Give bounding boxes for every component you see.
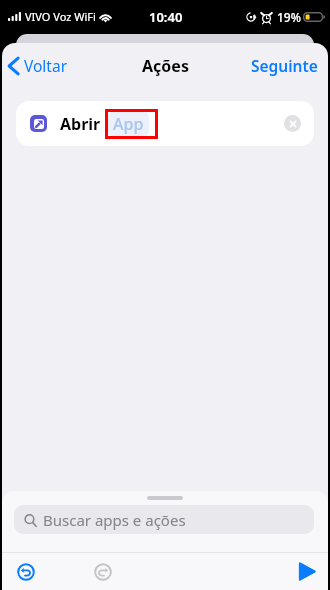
staticText: Ações bbox=[142, 55, 189, 77]
button[interactable]: Redo bbox=[87, 556, 119, 588]
button[interactable]: Buscar apps e ações bbox=[14, 505, 314, 534]
staticText: App bbox=[113, 113, 144, 135]
staticText: Seguinte bbox=[251, 55, 318, 76]
button[interactable]: Run bbox=[292, 556, 322, 587]
button[interactable]: Voltar bbox=[2, 49, 78, 82]
staticText: Buscar apps e ações bbox=[43, 510, 186, 530]
button[interactable]: Seguinte bbox=[240, 47, 328, 84]
staticText: 10:40 bbox=[149, 8, 183, 26]
staticText: Abrir bbox=[60, 113, 101, 135]
staticText: 19% bbox=[277, 9, 301, 25]
staticText: Voltar bbox=[24, 55, 68, 76]
button[interactable]: Abrir bbox=[16, 101, 314, 146]
button[interactable]: Undo bbox=[10, 556, 42, 588]
staticText: VIVO Voz WiFi bbox=[25, 9, 96, 24]
button[interactable]: Clear bbox=[284, 115, 301, 132]
